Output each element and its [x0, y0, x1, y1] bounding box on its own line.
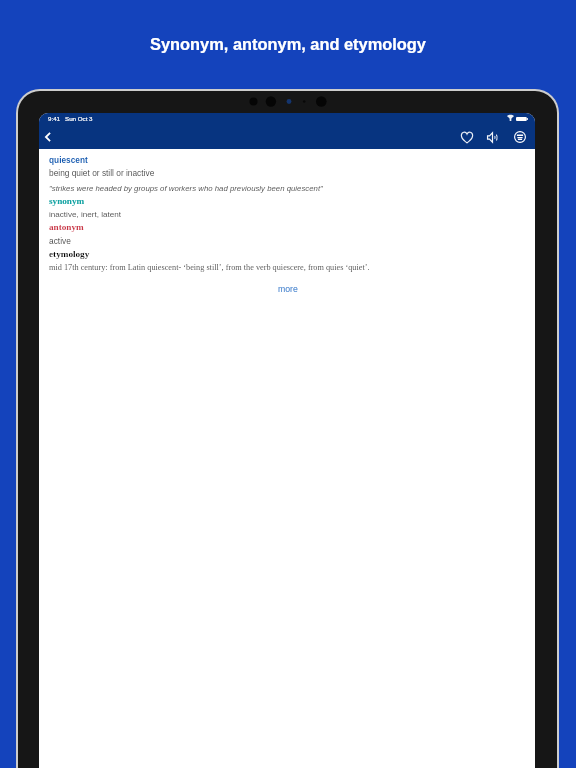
button[interactable]: more	[265, 282, 311, 295]
button[interactable]: Add to favorites	[455, 125, 479, 149]
staticText: 9:41	[48, 115, 61, 122]
staticText: mid 17th century: from Latin quiescent- …	[49, 263, 370, 272]
staticText: quiescent	[49, 155, 88, 164]
staticText: etymology	[49, 249, 90, 259]
staticText: Synonym, antonym, and etymology	[0, 35, 576, 53]
staticText: synonym	[49, 196, 85, 206]
staticText: more	[278, 284, 298, 294]
staticText: antonym	[49, 222, 84, 232]
staticText: Sun Oct 3	[65, 115, 93, 122]
staticText: being quiet or still or inactive	[49, 168, 155, 177]
button[interactable]: Menu	[508, 125, 532, 149]
button[interactable]: Pronounce	[480, 125, 504, 149]
staticText: "strikes were headed by groups of worker…	[49, 184, 323, 193]
staticText: inactive, inert, latent	[49, 210, 121, 219]
button[interactable]: Back	[39, 125, 60, 149]
staticText: active	[49, 236, 71, 245]
